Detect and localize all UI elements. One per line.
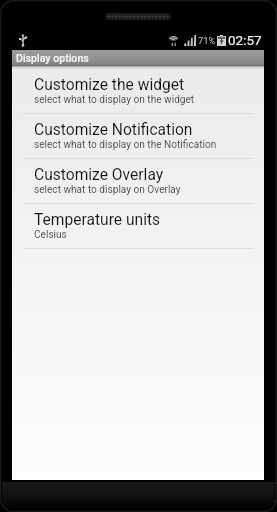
button[interactable]: Customize the widget <box>12 69 264 113</box>
button[interactable]: Customize Notification <box>12 114 264 158</box>
staticText: Celsius <box>34 229 67 241</box>
button[interactable]: Customize Overlay <box>12 159 264 203</box>
button[interactable]: Temperature units <box>12 204 264 248</box>
staticText: Customize Notification <box>34 121 193 139</box>
staticText: Temperature units <box>34 211 161 229</box>
staticText: Customize Overlay <box>34 166 164 184</box>
other: USB connected <box>19 34 27 46</box>
staticText: 71% <box>198 35 216 46</box>
staticText: Customize the widget <box>34 76 185 94</box>
staticText: Display options <box>16 52 89 64</box>
staticText: select what to display on the Notificati… <box>34 139 217 151</box>
staticText: select what to display on Overlay <box>34 184 181 196</box>
staticText: select what to display on the widget <box>34 94 195 106</box>
staticText: 02:57 <box>228 32 262 48</box>
